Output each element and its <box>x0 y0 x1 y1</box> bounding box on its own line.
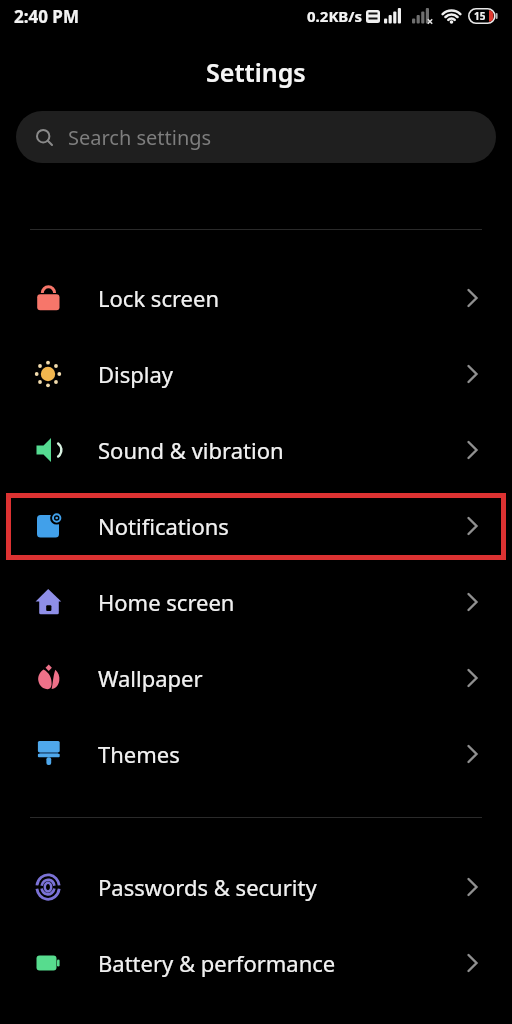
staticText: Notifications <box>98 511 229 541</box>
staticText: Sound & vibration <box>98 435 284 465</box>
button[interactable]: Home screen <box>0 564 512 640</box>
staticText: Search settings <box>68 124 212 151</box>
staticText: 2:40 PM <box>14 5 79 28</box>
staticText: Passwords & security <box>98 872 317 902</box>
button[interactable]: Search settings <box>16 111 496 163</box>
staticText: Display <box>98 359 174 389</box>
button[interactable]: Notifications <box>0 488 512 564</box>
staticText: 15 <box>474 9 486 23</box>
button[interactable]: Lock screen <box>0 260 512 336</box>
staticText: Home screen <box>98 587 235 617</box>
staticText: Battery & performance <box>98 948 336 978</box>
staticText: Wallpaper <box>98 663 203 693</box>
staticText: Settings <box>206 55 306 89</box>
button[interactable]: Passwords & security <box>0 849 512 925</box>
button[interactable]: Sound & vibration <box>0 412 512 488</box>
staticText: Themes <box>98 739 180 769</box>
staticText: Lock screen <box>98 283 220 313</box>
button[interactable]: Display <box>0 336 512 412</box>
staticText: 0.2KB/s <box>307 6 363 26</box>
button[interactable]: Battery & performance <box>0 925 512 1001</box>
button[interactable]: Wallpaper <box>0 640 512 716</box>
button[interactable]: Themes <box>0 716 512 792</box>
